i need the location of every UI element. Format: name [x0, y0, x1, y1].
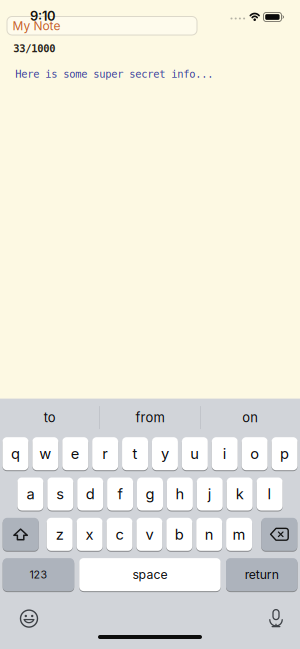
staticText: v: [145, 525, 153, 543]
button[interactable]: w: [32, 437, 58, 471]
staticText: r: [102, 445, 108, 462]
button[interactable]: y: [152, 437, 178, 471]
button[interactable]: return: [226, 558, 297, 592]
staticText: u: [190, 445, 199, 462]
staticText: c: [115, 525, 123, 543]
button[interactable]: x: [77, 517, 103, 551]
button[interactable]: q: [2, 437, 28, 471]
staticText: return: [245, 567, 279, 582]
button[interactable]: u: [182, 437, 208, 471]
staticText: s: [56, 485, 64, 503]
staticText: j: [208, 485, 212, 503]
staticText: m: [233, 525, 246, 543]
button[interactable]: z: [47, 517, 73, 551]
button[interactable]: My Note: [7, 16, 197, 35]
button[interactable]: to: [0, 399, 99, 437]
button[interactable]: d: [77, 477, 103, 511]
button[interactable]: Dictate: [256, 604, 296, 634]
staticText: k: [236, 485, 244, 503]
button[interactable]: a: [17, 477, 43, 511]
button[interactable]: f: [107, 477, 133, 511]
staticText: n: [205, 525, 214, 543]
staticText: to: [44, 410, 56, 425]
button[interactable]: l: [257, 477, 283, 511]
button[interactable]: i: [212, 437, 238, 471]
button[interactable]: t: [122, 437, 148, 471]
staticText: b: [175, 525, 184, 543]
staticText: from: [135, 410, 164, 425]
staticText: on: [242, 410, 258, 425]
staticText: a: [26, 485, 34, 503]
button[interactable]: m: [226, 517, 252, 551]
staticText: p: [280, 445, 289, 462]
staticText: Here is some super secret info...: [15, 68, 213, 80]
staticText: o: [250, 445, 259, 462]
button[interactable]: s: [47, 477, 73, 511]
button[interactable]: v: [136, 517, 162, 551]
button[interactable]: r: [92, 437, 118, 471]
button[interactable]: Shift: [3, 517, 39, 551]
staticText: f: [118, 485, 123, 503]
staticText: d: [86, 485, 95, 503]
staticText: g: [145, 485, 154, 503]
staticText: h: [175, 485, 184, 503]
button[interactable]: k: [227, 477, 253, 511]
button[interactable]: b: [166, 517, 192, 551]
staticText: x: [86, 525, 94, 543]
staticText: z: [56, 525, 64, 543]
button[interactable]: j: [197, 477, 223, 511]
button[interactable]: Emoji: [9, 604, 49, 634]
button[interactable]: e: [62, 437, 88, 471]
staticText: e: [71, 445, 80, 462]
staticText: l: [268, 485, 272, 503]
button[interactable]: g: [137, 477, 163, 511]
button[interactable]: from: [100, 399, 200, 437]
button[interactable]: on: [201, 399, 300, 437]
staticText: My Note: [12, 19, 60, 33]
staticText: w: [39, 445, 51, 462]
staticText: 123: [29, 568, 47, 581]
staticText: t: [132, 445, 137, 462]
staticText: i: [223, 445, 227, 462]
button[interactable]: c: [106, 517, 132, 551]
staticText: 9:10: [30, 8, 56, 24]
button[interactable]: space: [79, 558, 221, 592]
button[interactable]: 123: [3, 558, 74, 592]
button[interactable]: n: [196, 517, 222, 551]
staticText: y: [161, 445, 169, 462]
staticText: q: [11, 445, 20, 462]
button[interactable]: o: [242, 437, 268, 471]
staticText: 33/1000: [13, 43, 55, 55]
staticText: space: [132, 567, 167, 582]
button[interactable]: Delete: [261, 517, 297, 551]
button[interactable]: p: [272, 437, 298, 471]
button[interactable]: h: [167, 477, 193, 511]
